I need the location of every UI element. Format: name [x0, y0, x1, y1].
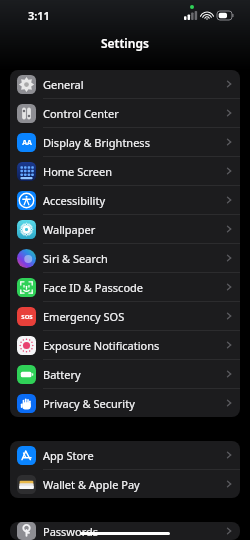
staticText: Wallpaper	[43, 222, 96, 237]
button[interactable]: Face ID & Passcode	[10, 273, 240, 302]
staticText: Emergency SOS	[43, 309, 125, 324]
button[interactable]: Control Center	[10, 99, 240, 128]
staticText: Settings	[101, 35, 149, 51]
button[interactable]: Battery	[10, 360, 240, 389]
staticText: Exposure Notifications	[43, 338, 160, 353]
staticText: Privacy & Security	[43, 396, 135, 411]
button[interactable]: General	[10, 70, 240, 99]
staticText: General	[43, 77, 84, 92]
staticText: SOS	[21, 313, 33, 321]
staticText: Home Screen	[43, 164, 113, 179]
button[interactable]: Siri & Search	[10, 244, 240, 273]
staticText: Wallet & Apple Pay	[43, 477, 140, 492]
staticText: Accessibility	[43, 193, 106, 208]
button[interactable]: Home Screen	[10, 157, 240, 186]
button[interactable]: Privacy & Security	[10, 389, 240, 417]
staticText: 3:11	[28, 8, 50, 23]
staticText: Control Center	[43, 106, 119, 121]
staticText: Face ID & Passcode	[43, 280, 144, 295]
button[interactable]: Wallpaper	[10, 215, 240, 244]
button[interactable]: Exposure Notifications	[10, 331, 240, 360]
staticText: AA	[22, 138, 32, 148]
staticText: Display & Brightness	[43, 135, 150, 150]
button[interactable]: SOS	[10, 302, 240, 331]
staticText: App Store	[43, 448, 94, 463]
button[interactable]: App Store	[10, 441, 240, 470]
button[interactable]: Accessibility	[10, 186, 240, 215]
staticText: Passwords	[43, 524, 99, 539]
staticText: Battery	[43, 367, 81, 382]
button[interactable]: AA	[10, 128, 240, 157]
button[interactable]: Passwords	[10, 522, 240, 540]
button[interactable]: Wallet & Apple Pay	[10, 470, 240, 498]
staticText: Siri & Search	[43, 251, 108, 266]
